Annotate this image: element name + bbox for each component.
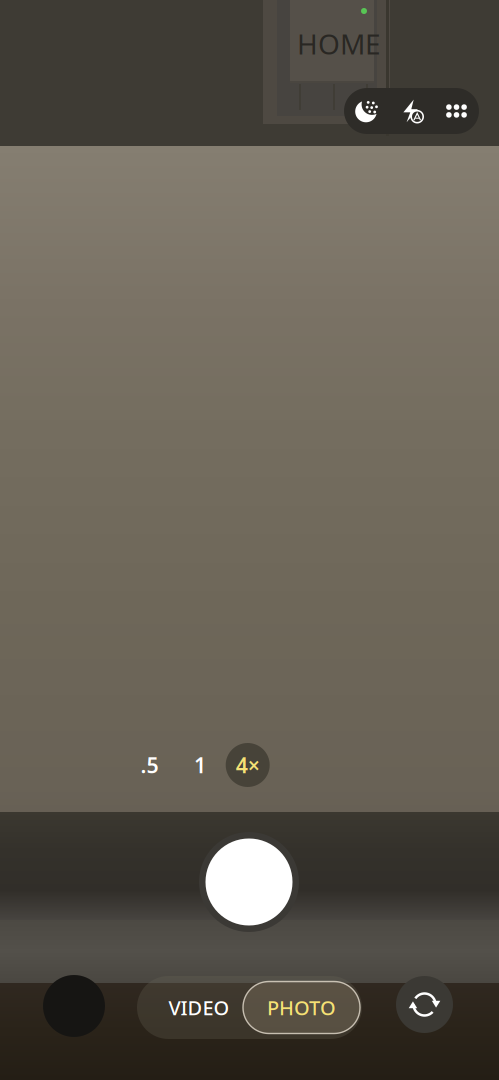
button[interactable]: PHOTO [243,981,360,1033]
staticText: .5 [140,751,158,779]
staticText: 4× [236,751,260,779]
button[interactable]: Photo library [43,975,105,1037]
button[interactable]: 4× [226,743,270,787]
staticText: PHOTO [267,994,336,1021]
button[interactable]: .5 [125,743,174,787]
staticText: VIDEO [168,994,229,1021]
staticText: 1 [194,751,206,779]
button[interactable]: More camera controls [434,88,479,134]
staticText: HOME [297,25,381,62]
button[interactable]: Switch camera [396,976,453,1033]
button[interactable]: Take photo [199,832,299,932]
button[interactable]: Night mode [344,88,389,134]
button[interactable]: 1 [174,743,226,787]
button[interactable]: VIDEO [137,981,243,1033]
button[interactable]: Flash auto [389,88,434,134]
